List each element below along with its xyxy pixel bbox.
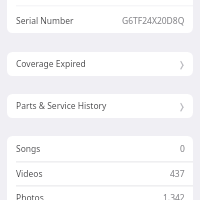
other: Open Parts & Service History [179, 101, 185, 111]
button[interactable]: Coverage Expired [7, 52, 193, 76]
button[interactable]: Serial Number [7, 7, 193, 34]
button[interactable]: Photos [7, 185, 193, 200]
staticText: Coverage Expired [16, 58, 86, 70]
button[interactable]: Parts & Service History [7, 94, 193, 118]
staticText: Videos [16, 168, 43, 180]
staticText: 437 [170, 168, 185, 180]
staticText: 1,342 [163, 192, 185, 200]
staticText: Photos [16, 192, 44, 200]
staticText: Parts & Service History [16, 100, 107, 112]
staticText: G6TF24X20D8Q [122, 15, 185, 27]
staticText: Serial Number [16, 15, 74, 27]
button[interactable]: Songs [7, 136, 193, 161]
staticText: 0 [180, 143, 185, 155]
other: Open Coverage Expired [179, 59, 185, 69]
button[interactable]: Videos [7, 161, 193, 186]
staticText: Songs [16, 143, 41, 155]
